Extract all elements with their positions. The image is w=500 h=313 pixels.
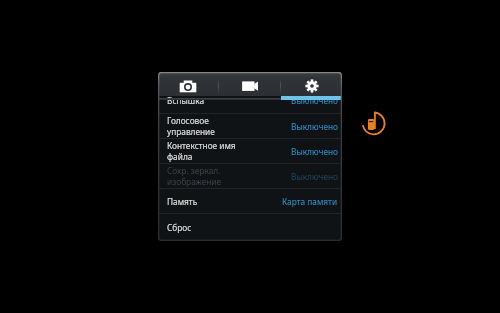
staticText: Карта памяти — [282, 196, 338, 207]
staticText: Выключено — [291, 95, 338, 106]
button[interactable]: Settings — [281, 72, 342, 96]
staticText: Выключено — [291, 146, 338, 157]
button[interactable]: Auto rotate screen — [361, 106, 392, 137]
staticText: Память — [167, 196, 198, 207]
button[interactable]: Camera mode — [158, 72, 218, 96]
staticText: Контекстное имя файла — [167, 140, 236, 163]
button[interactable]: Память — [158, 189, 342, 213]
button[interactable]: Контекстное имя файла — [158, 139, 342, 163]
button[interactable]: Голосовое управление — [158, 114, 342, 138]
staticText: Вспышка — [167, 95, 205, 106]
staticText: Выключено — [291, 121, 338, 132]
button[interactable]: Video mode — [219, 72, 280, 96]
button[interactable]: Вспышка — [158, 72, 342, 113]
staticText: Сброс — [167, 222, 192, 233]
staticText: Голосовое управление — [167, 115, 215, 138]
button[interactable]: Сохр. зеркал. изображение — [158, 164, 342, 188]
button[interactable]: Сброс — [158, 214, 342, 241]
staticText: Сохр. зеркал. изображение — [167, 165, 222, 188]
staticText: Выключено — [291, 171, 338, 182]
